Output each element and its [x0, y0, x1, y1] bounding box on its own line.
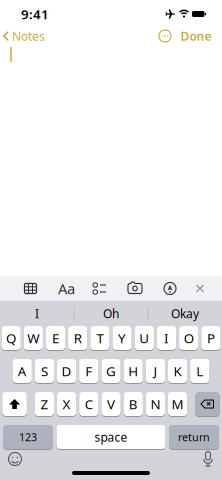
- staticText: R: [74, 329, 82, 347]
- staticText: M: [172, 395, 184, 413]
- button[interactable]: G: [101, 358, 121, 383]
- button[interactable]: F: [79, 358, 98, 383]
- staticText: Y: [118, 329, 126, 347]
- button[interactable]: L: [190, 358, 209, 383]
- button[interactable]: Back: [3, 26, 45, 46]
- staticText: A: [18, 362, 27, 380]
- button[interactable]: M: [168, 391, 187, 416]
- button[interactable]: B: [124, 391, 143, 416]
- button[interactable]: I: [1, 301, 73, 326]
- button[interactable]: T: [90, 325, 109, 350]
- button[interactable]: K: [168, 358, 187, 383]
- staticText: Oh: [103, 305, 119, 321]
- button[interactable]: Oh: [75, 301, 147, 326]
- staticText: N: [150, 395, 160, 413]
- button[interactable]: Okay: [149, 301, 221, 326]
- staticText: D: [62, 362, 72, 380]
- staticText: C: [85, 395, 93, 413]
- staticText: space: [94, 429, 127, 445]
- staticText: K: [174, 362, 182, 380]
- button[interactable]: 123: [3, 424, 53, 449]
- button[interactable]: E: [46, 325, 65, 350]
- staticText: L: [196, 362, 203, 380]
- staticText: Done: [180, 28, 211, 44]
- button[interactable]: Checklist: [89, 276, 109, 301]
- button[interactable]: S: [35, 358, 54, 383]
- staticText: F: [85, 362, 92, 380]
- staticText: G: [106, 362, 116, 380]
- staticText: I: [164, 329, 169, 347]
- button[interactable]: Dismiss toolbar: [191, 276, 209, 301]
- staticText: S: [41, 362, 48, 380]
- staticText: return: [178, 430, 210, 444]
- button[interactable]: space: [56, 424, 165, 449]
- staticText: Q: [6, 329, 16, 347]
- button[interactable]: C: [79, 391, 98, 416]
- button[interactable]: O: [179, 325, 198, 350]
- button[interactable]: A: [13, 358, 32, 383]
- staticText: Z: [40, 395, 48, 413]
- button[interactable]: Done: [180, 26, 211, 46]
- button[interactable]: return: [169, 424, 219, 449]
- staticText: T: [96, 329, 103, 347]
- button[interactable]: J: [146, 358, 165, 383]
- button[interactable]: X: [57, 391, 76, 416]
- staticText: 9:41: [21, 5, 49, 23]
- staticText: Aa: [58, 279, 75, 298]
- staticText: Notes: [12, 28, 45, 44]
- staticText: H: [128, 362, 138, 380]
- button[interactable]: More: [158, 29, 172, 43]
- button[interactable]: Insert photo: [125, 276, 145, 301]
- staticText: Okay: [171, 305, 199, 321]
- button[interactable]: Insert table: [20, 276, 40, 301]
- button[interactable]: H: [124, 358, 143, 383]
- button[interactable]: V: [101, 391, 121, 416]
- button[interactable]: R: [68, 325, 87, 350]
- button[interactable]: Markup: [160, 276, 180, 301]
- button[interactable]: Shift: [2, 391, 27, 416]
- staticText: W: [27, 329, 39, 347]
- staticText: B: [129, 395, 138, 413]
- button[interactable]: Emoji: [6, 450, 24, 468]
- button[interactable]: Text format: [55, 276, 77, 301]
- button[interactable]: W: [24, 325, 43, 350]
- button[interactable]: I: [157, 325, 176, 350]
- staticText: I: [35, 305, 39, 321]
- button[interactable]: Delete: [195, 391, 220, 416]
- button[interactable]: U: [135, 325, 154, 350]
- staticText: 123: [19, 430, 37, 444]
- staticText: J: [153, 362, 157, 380]
- button[interactable]: Z: [35, 391, 54, 416]
- button[interactable]: D: [57, 358, 76, 383]
- button[interactable]: Y: [112, 325, 132, 350]
- button[interactable]: Dictation: [202, 451, 214, 467]
- staticText: V: [107, 395, 115, 413]
- button[interactable]: N: [146, 391, 165, 416]
- staticText: X: [63, 395, 71, 413]
- staticText: O: [184, 329, 194, 347]
- staticText: P: [207, 329, 215, 347]
- staticText: E: [52, 329, 59, 347]
- button[interactable]: Q: [1, 325, 21, 350]
- staticText: U: [139, 329, 149, 347]
- button[interactable]: P: [201, 325, 220, 350]
